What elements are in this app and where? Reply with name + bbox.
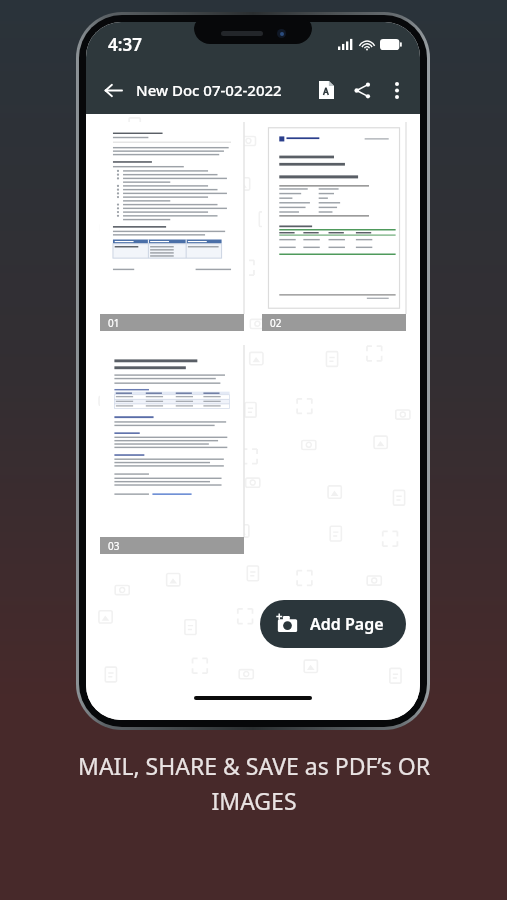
- button[interactable]: Export as PDF: [308, 72, 344, 108]
- staticText: IMAGES: [211, 785, 297, 816]
- button[interactable]: 02: [262, 122, 406, 331]
- button[interactable]: Share: [344, 72, 380, 108]
- button[interactable]: Back: [94, 71, 132, 109]
- button[interactable]: More options: [380, 73, 414, 107]
- button[interactable]: Add Page: [260, 600, 406, 648]
- staticText: New Doc 07-02-2022 16:41: [136, 80, 308, 100]
- staticText: Add Page: [310, 613, 384, 635]
- staticText: 03: [108, 539, 120, 553]
- staticText: MAIL, SHARE & SAVE as PDF’s OR: [78, 750, 430, 781]
- staticText: 02: [270, 316, 282, 330]
- button[interactable]: 03: [100, 345, 244, 554]
- staticText: 4:37: [108, 33, 142, 56]
- button[interactable]: 01: [100, 122, 244, 331]
- staticText: 01: [108, 316, 120, 330]
